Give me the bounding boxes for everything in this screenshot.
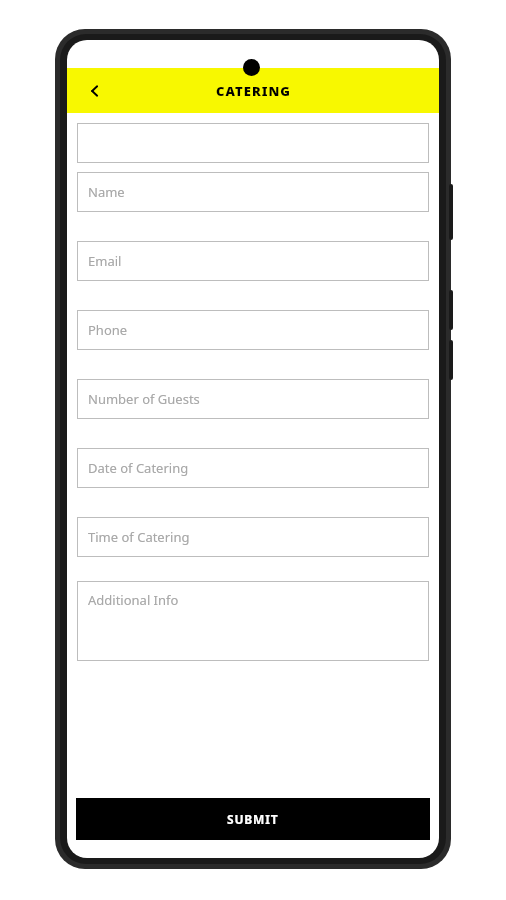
staticText: CATERING [216, 82, 291, 100]
staticText: Phone [88, 321, 128, 339]
button[interactable]: Time of Catering [77, 517, 429, 557]
button[interactable]: Name [77, 172, 429, 212]
staticText: Number of Guests [88, 390, 200, 408]
button[interactable]: Phone [77, 310, 429, 350]
staticText: Date of Catering [88, 459, 189, 477]
staticText: Name [88, 183, 125, 201]
button[interactable]: Back [75, 71, 115, 111]
staticText: Additional Info [88, 591, 179, 609]
button[interactable] [77, 123, 429, 163]
staticText: SUBMIT [227, 811, 279, 827]
button[interactable]: Number of Guests [77, 379, 429, 419]
button[interactable]: Email [77, 241, 429, 281]
button[interactable]: Additional Info [77, 581, 429, 661]
staticText: Email [88, 252, 122, 270]
button[interactable]: SUBMIT [76, 798, 430, 840]
button[interactable]: Date of Catering [77, 448, 429, 488]
staticText: Time of Catering [88, 528, 190, 546]
